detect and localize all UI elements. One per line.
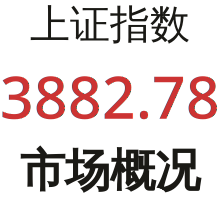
staticText: 上证指数 xyxy=(30,0,190,49)
staticText: 市场概况 xyxy=(20,143,200,199)
staticText: 3882.78 xyxy=(0,57,220,135)
